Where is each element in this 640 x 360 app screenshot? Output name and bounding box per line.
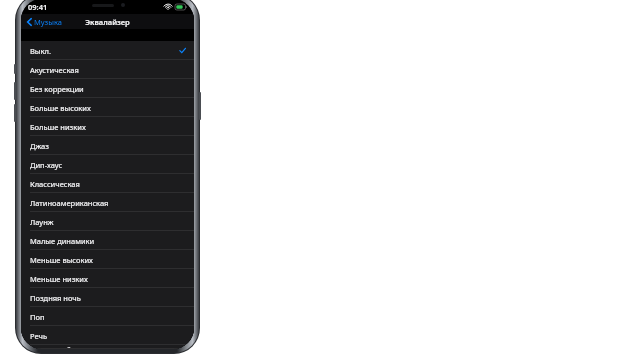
staticText: 09:41 <box>28 2 48 12</box>
button[interactable]: Музыка <box>24 16 65 28</box>
button[interactable]: Больше низких <box>21 117 194 136</box>
button[interactable]: Поздняя ночь <box>21 288 194 307</box>
staticText: Без коррекции <box>30 84 84 94</box>
staticText: Классическая <box>30 179 80 189</box>
button[interactable]: Джаз <box>21 136 194 155</box>
staticText: Поздняя ночь <box>30 293 81 303</box>
staticText: Меньше низких <box>30 274 88 284</box>
button[interactable]: Больше высоких <box>21 98 194 117</box>
staticText: Джаз <box>30 141 49 151</box>
button[interactable]: Дип-хаус <box>21 155 194 174</box>
button[interactable]: Акустическая <box>21 60 194 79</box>
staticText: Выкл. <box>30 46 51 56</box>
button[interactable]: Выкл. <box>21 41 194 60</box>
staticText: Акустическая <box>30 65 79 75</box>
staticText: Малые динамики <box>30 236 95 246</box>
staticText: Меньше высоких <box>30 255 93 265</box>
staticText: Больше высоких <box>30 103 91 113</box>
button[interactable]: Меньше высоких <box>21 250 194 269</box>
staticText: Поп <box>30 312 45 322</box>
button[interactable]: Речь <box>21 326 194 345</box>
staticText: Музыка <box>34 17 62 27</box>
button[interactable]: Классическая <box>21 174 194 193</box>
button[interactable]: Без коррекции <box>21 79 194 98</box>
button[interactable]: Меньше низких <box>21 269 194 288</box>
staticText: Речь <box>30 331 48 341</box>
button[interactable]: Латиноамериканская <box>21 193 194 212</box>
staticText: Дип-хаус <box>30 160 63 170</box>
staticText: Эквалайзер <box>85 17 130 27</box>
staticText: Латиноамериканская <box>30 198 109 208</box>
staticText: Больше низких <box>30 122 86 132</box>
button[interactable]: Поп <box>21 307 194 326</box>
staticText: Лаунж <box>30 217 54 227</box>
button[interactable]: Ритм-энд-блюз <box>21 345 194 349</box>
staticText: Ритм-энд-блюз <box>30 345 85 349</box>
button[interactable]: Лаунж <box>21 212 194 231</box>
button[interactable]: Малые динамики <box>21 231 194 250</box>
